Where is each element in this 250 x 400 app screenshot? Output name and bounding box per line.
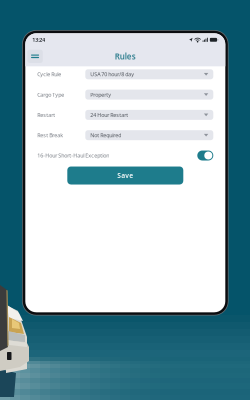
staticText: Rules	[115, 51, 136, 62]
staticText: 24 Hour Restart	[90, 111, 128, 118]
button[interactable]: Property	[85, 90, 213, 100]
button[interactable]: 16-Hour Short-Haul Exception	[197, 150, 213, 160]
staticText: 16-Hour Short-Haul Exception	[37, 152, 109, 159]
staticText: Save	[117, 171, 133, 180]
staticText: Cargo Type	[37, 91, 64, 98]
button[interactable]: Menu	[27, 50, 43, 63]
staticText: Rest Break	[37, 132, 63, 139]
staticText: Restart	[37, 111, 55, 118]
staticText: 13:24	[32, 36, 45, 43]
button[interactable]: 24 Hour Restart	[85, 110, 213, 120]
staticText: USA 70 hour/8 day	[90, 71, 134, 78]
button[interactable]: Not Required	[85, 130, 213, 140]
staticText: Property	[90, 91, 111, 98]
staticText: Cycle Rule	[37, 71, 61, 78]
button[interactable]: USA 70 hour/8 day	[85, 69, 213, 79]
button[interactable]: Save	[67, 166, 183, 184]
staticText: Not Required	[90, 132, 121, 139]
